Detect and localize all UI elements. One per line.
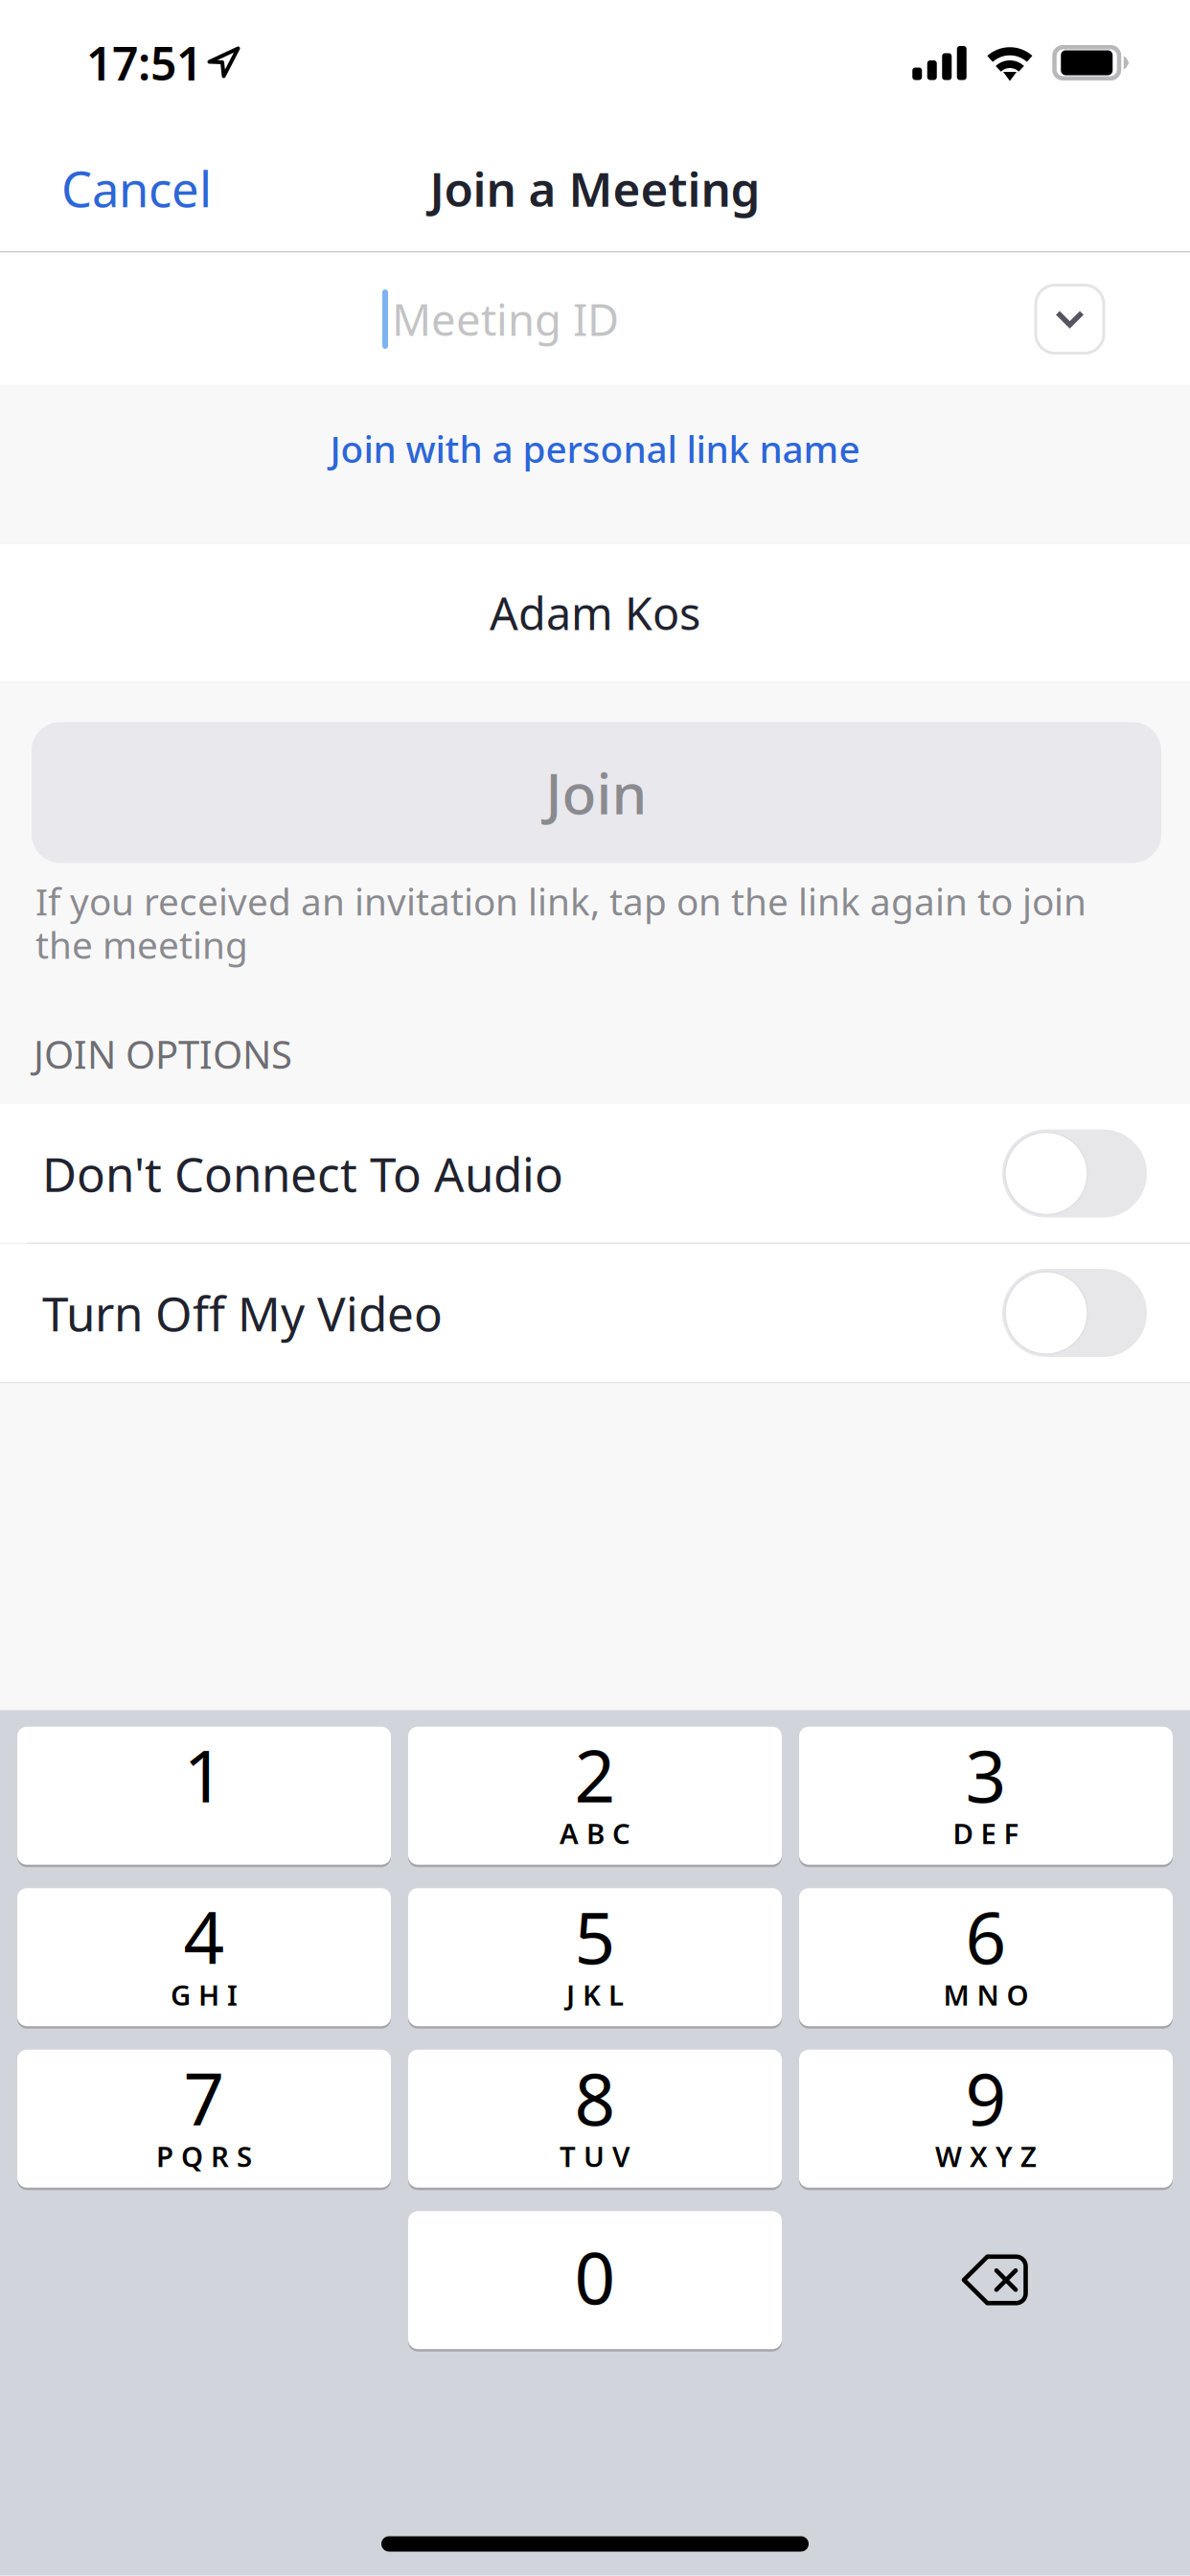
- staticText: 0: [574, 2229, 616, 2324]
- button[interactable]: 8: [408, 2048, 782, 2189]
- staticText: P Q R S: [156, 2137, 252, 2175]
- staticText: If you received an invitation link, tap …: [35, 876, 1087, 969]
- staticText: T U V: [560, 2137, 630, 2175]
- button[interactable]: 6: [799, 1887, 1173, 2027]
- button[interactable]: Turn Off My Video: [0, 1244, 1190, 1382]
- button[interactable]: Join: [32, 722, 1161, 863]
- button[interactable]: 9: [799, 2048, 1173, 2189]
- staticText: W X Y Z: [935, 2137, 1037, 2175]
- staticText: Don't Connect To Audio: [42, 1142, 563, 1205]
- staticText: 3: [965, 1727, 1007, 1822]
- staticText: Adam Kos: [490, 583, 700, 643]
- staticText: 7: [183, 2050, 225, 2145]
- staticText: 5: [574, 1889, 616, 1984]
- staticText: 4: [183, 1889, 225, 1984]
- staticText: 17:51: [86, 32, 202, 93]
- staticText: 6: [965, 1889, 1007, 1984]
- staticText: JOIN OPTIONS: [34, 1028, 292, 1079]
- staticText: Turn Off My Video: [42, 1281, 443, 1344]
- button[interactable]: 5: [408, 1887, 782, 2027]
- staticText: J K L: [566, 1976, 624, 2013]
- staticText: Cancel: [61, 156, 212, 221]
- button[interactable]: Show recent meeting IDs: [1036, 285, 1104, 353]
- button[interactable]: 2: [408, 1725, 782, 1866]
- button[interactable]: Don't Connect To Audio: [0, 1104, 1190, 1242]
- button[interactable]: 1: [17, 1725, 391, 1866]
- button[interactable]: Cancel: [33, 137, 240, 240]
- button[interactable]: Join with a personal link name: [0, 387, 1190, 543]
- button[interactable]: Delete: [799, 2210, 1173, 2350]
- staticText: A B C: [560, 1814, 630, 1852]
- staticText: 2: [574, 1727, 616, 1822]
- staticText: G H I: [171, 1976, 238, 2013]
- staticText: M N O: [943, 1976, 1029, 2013]
- button[interactable]: 4: [17, 1887, 391, 2027]
- staticText: D E F: [953, 1814, 1019, 1852]
- button[interactable]: 7: [17, 2048, 391, 2189]
- button[interactable]: 3: [799, 1725, 1173, 1866]
- staticText: Meeting ID: [392, 290, 619, 348]
- staticText: 9: [965, 2050, 1007, 2145]
- staticText: 8: [574, 2050, 616, 2145]
- staticText: Join: [546, 755, 647, 830]
- staticText: Join with a personal link name: [330, 424, 860, 473]
- staticText: Join a Meeting: [430, 157, 760, 220]
- staticText: 1: [183, 1727, 225, 1822]
- button[interactable]: 0: [408, 2210, 782, 2350]
